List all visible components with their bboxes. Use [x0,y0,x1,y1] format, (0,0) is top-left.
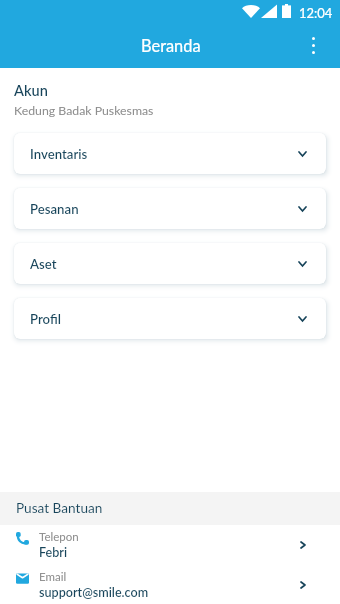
button[interactable]: Inventaris [14,133,326,174]
button[interactable]: Email [0,565,340,604]
staticText: Profil [30,311,61,327]
staticText: support@smile.com [39,585,149,600]
staticText: Telepon [39,530,79,544]
button[interactable]: Profil [14,298,326,339]
staticText: Inventaris [30,146,88,162]
staticText: Email [39,570,67,584]
button[interactable]: Pesanan [14,188,326,229]
staticText: 12:04 [299,5,333,21]
staticText: Pesanan [30,201,79,217]
staticText: Kedung Badak Puskesmas [14,103,154,118]
staticText: Aset [30,256,57,272]
staticText: Febri [39,545,68,560]
staticText: Akun [14,82,48,99]
button[interactable]: More options [292,24,334,66]
staticText: Beranda [141,36,201,56]
button[interactable]: Aset [14,243,326,284]
button[interactable]: Telepon [0,525,340,565]
staticText: Pusat Bantuan [16,500,103,516]
